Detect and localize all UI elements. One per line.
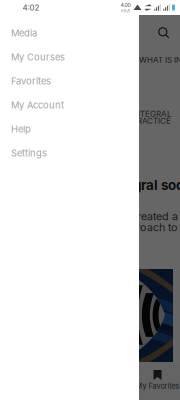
staticText: KB/s [121,8,130,13]
staticText: 4.00 [120,2,130,8]
staticText: My Account [11,99,64,111]
button[interactable]: My Account [0,93,139,117]
button[interactable]: Search [152,21,176,45]
staticText: Settings [11,147,47,159]
staticText: WHAT IS INTEGRAL LIFE PRACTICE? [139,55,180,65]
button[interactable]: Media [0,21,139,45]
staticText: INTEGRAL [132,109,172,119]
button[interactable]: My Courses [0,45,139,69]
staticText: My Favorites [135,382,179,390]
button[interactable]: Favorites [0,69,139,93]
staticText: PRACTICE [132,116,171,126]
staticText: approach to [116,221,177,234]
staticText: 4:02 [22,3,39,12]
staticText: Help [11,123,31,135]
staticText: Favorites [11,75,51,87]
staticText: Integral social [108,177,180,193]
staticText: We created a [112,210,178,223]
button[interactable]: My Favorites [135,362,180,400]
button[interactable]: Settings [0,141,139,165]
staticText: My Courses [11,51,65,63]
button[interactable]: Help [0,117,139,141]
staticText: Media [11,27,37,39]
